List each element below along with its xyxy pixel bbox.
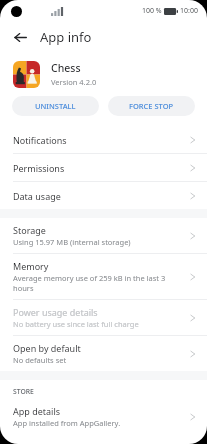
staticText: 100 % — [142, 6, 162, 16]
staticText: Version 4.2.0 — [51, 77, 97, 87]
staticText: Notifications — [13, 134, 190, 146]
staticText: FORCE STOP — [129, 101, 174, 111]
staticText: Data usage — [13, 190, 190, 202]
staticText: Storage — [13, 224, 46, 236]
staticText: 10:00 — [180, 6, 198, 16]
button[interactable]: Storage — [0, 218, 207, 253]
staticText: No battery use since last full charge — [13, 319, 139, 329]
staticText: Average memory use of 259 kB in the last… — [13, 273, 184, 293]
button[interactable]: Open by default — [0, 336, 207, 371]
staticText: App info — [40, 28, 92, 46]
staticText: App installed from AppGallery. — [13, 418, 121, 428]
staticText: App details — [13, 405, 61, 417]
button[interactable]: App details — [0, 399, 207, 434]
button[interactable]: UNINSTALL — [12, 96, 99, 116]
button[interactable]: Power usage details — [0, 300, 207, 335]
staticText: UNINSTALL — [35, 101, 76, 111]
staticText: Permissions — [13, 162, 190, 174]
button[interactable]: Back — [8, 25, 32, 49]
staticText: STORE — [13, 387, 34, 396]
staticText: Power usage details — [13, 306, 98, 318]
button[interactable]: Permissions — [0, 154, 207, 181]
staticText: Using 15.97 MB (internal storage) — [13, 237, 131, 247]
button[interactable]: FORCE STOP — [108, 96, 195, 116]
staticText: Open by default — [13, 342, 81, 354]
staticText: Memory — [13, 260, 49, 272]
staticText: Chess — [51, 61, 81, 75]
button[interactable]: Memory — [0, 254, 207, 299]
staticText: No defaults set — [13, 355, 67, 365]
button[interactable]: Data usage — [0, 182, 207, 209]
button[interactable]: Notifications — [0, 126, 207, 153]
